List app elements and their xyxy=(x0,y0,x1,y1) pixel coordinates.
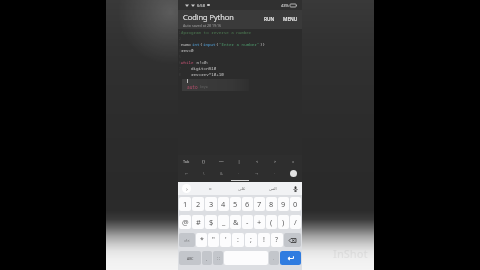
staticText: Auto saved at 28 19:16 xyxy=(183,23,222,28)
staticText: ABC xyxy=(187,256,194,261)
button[interactable]: Keyboard settings xyxy=(290,170,297,177)
staticText: 1 xyxy=(179,31,181,35)
button[interactable]: 8 xyxy=(266,197,277,211)
button[interactable]: =\< xyxy=(179,233,195,247)
button[interactable]: " xyxy=(208,233,219,247)
button[interactable]: More suggestions xyxy=(182,184,191,193)
button[interactable]: 3 xyxy=(205,197,217,211)
staticText: digit=n%10 xyxy=(181,66,217,72)
staticText: auto xyxy=(187,84,198,90)
button[interactable]: < xyxy=(248,155,266,167)
button[interactable]: ? xyxy=(271,233,283,247)
staticText: MENU xyxy=(283,16,298,23)
button[interactable]: > xyxy=(266,155,284,167)
button[interactable]: . xyxy=(269,251,279,265)
button[interactable]: $ xyxy=(205,215,217,229)
button[interactable]: @ xyxy=(179,215,191,229)
button[interactable]: Backspace xyxy=(284,233,301,247)
button[interactable]: على xyxy=(226,182,257,195)
staticText: → xyxy=(255,171,259,175)
button[interactable]: + xyxy=(254,215,265,229)
button[interactable]: 9 xyxy=(278,197,289,211)
button[interactable]: | xyxy=(230,155,248,167)
staticText: 6 xyxy=(179,61,181,65)
button[interactable]: _ xyxy=(218,215,229,229)
button[interactable]: # xyxy=(192,215,204,229)
staticText: ∷ xyxy=(217,256,220,261)
button[interactable]: ── xyxy=(212,155,230,167)
button[interactable]: / xyxy=(290,215,301,229)
button[interactable]: 6 xyxy=(242,197,253,211)
staticText: & xyxy=(220,171,223,176)
staticText: ( xyxy=(200,42,203,48)
button[interactable]: RUN xyxy=(262,12,277,27)
staticText: ← xyxy=(185,171,189,175)
staticText: Coding Python xyxy=(183,12,234,22)
button[interactable]: \ xyxy=(195,167,212,179)
button[interactable]: ← xyxy=(178,167,195,179)
button[interactable]: & xyxy=(212,167,230,179)
button[interactable]: ) xyxy=(278,215,289,229)
staticText: {} xyxy=(202,159,205,164)
button[interactable]: = xyxy=(284,155,302,167)
button[interactable]: o xyxy=(194,182,226,195)
staticText: = xyxy=(292,159,295,164)
button[interactable]: * xyxy=(196,233,207,247)
button[interactable]: ABC xyxy=(179,251,201,265)
staticText: ; xyxy=(250,235,252,245)
staticText: RUN xyxy=(264,16,275,23)
staticText: _ xyxy=(222,217,226,227)
staticText: · xyxy=(238,171,240,176)
staticText: 4 xyxy=(221,199,226,209)
staticText: InShot xyxy=(333,246,368,261)
button[interactable]: 1 xyxy=(179,197,191,211)
staticText: 43% xyxy=(281,3,289,8)
staticText: ── xyxy=(219,159,224,163)
button[interactable]: Tab xyxy=(178,155,195,167)
button[interactable]: : xyxy=(232,233,244,247)
staticText: > xyxy=(274,159,277,164)
button[interactable]: ' xyxy=(220,233,231,247)
button[interactable]: 5 xyxy=(230,197,241,211)
staticText: keyw xyxy=(200,85,208,89)
button[interactable]: 0 xyxy=(290,197,301,211)
staticText: 5 xyxy=(233,199,238,209)
button[interactable]: - xyxy=(242,215,253,229)
staticText: · xyxy=(274,171,276,176)
button[interactable]: ; xyxy=(245,233,257,247)
staticText: / xyxy=(294,217,297,227)
button[interactable]: & xyxy=(230,215,241,229)
staticText: 6 xyxy=(245,199,250,209)
button[interactable]: , xyxy=(202,251,212,265)
staticText: ( xyxy=(216,42,219,48)
staticText: : xyxy=(237,235,239,245)
button[interactable]: 7 xyxy=(254,197,265,211)
staticText: ( xyxy=(270,217,273,227)
button[interactable]: MENU xyxy=(281,12,300,27)
staticText: 2 xyxy=(179,37,181,41)
staticText: على xyxy=(238,186,246,191)
staticText: ' xyxy=(225,235,227,245)
staticText: rev=0 xyxy=(181,48,194,54)
button[interactable]: Voice input xyxy=(288,182,302,195)
staticText: - xyxy=(246,217,249,227)
button[interactable]: ( xyxy=(266,215,277,229)
button[interactable]: 4 xyxy=(218,197,229,211)
button[interactable]: 2 xyxy=(192,197,204,211)
button[interactable]: ! xyxy=(258,233,270,247)
staticText: 7 xyxy=(257,199,262,209)
button[interactable]: → xyxy=(248,167,266,179)
button[interactable]: Enter xyxy=(280,251,301,265)
button[interactable]: الس xyxy=(257,182,288,195)
staticText: 3 xyxy=(209,199,214,209)
staticText: \ xyxy=(203,171,205,176)
staticText: ! xyxy=(263,235,265,245)
staticText: rev=rev*10+10 xyxy=(181,72,224,78)
button[interactable]: {} xyxy=(195,155,212,167)
button[interactable]: ∷ xyxy=(213,251,223,265)
